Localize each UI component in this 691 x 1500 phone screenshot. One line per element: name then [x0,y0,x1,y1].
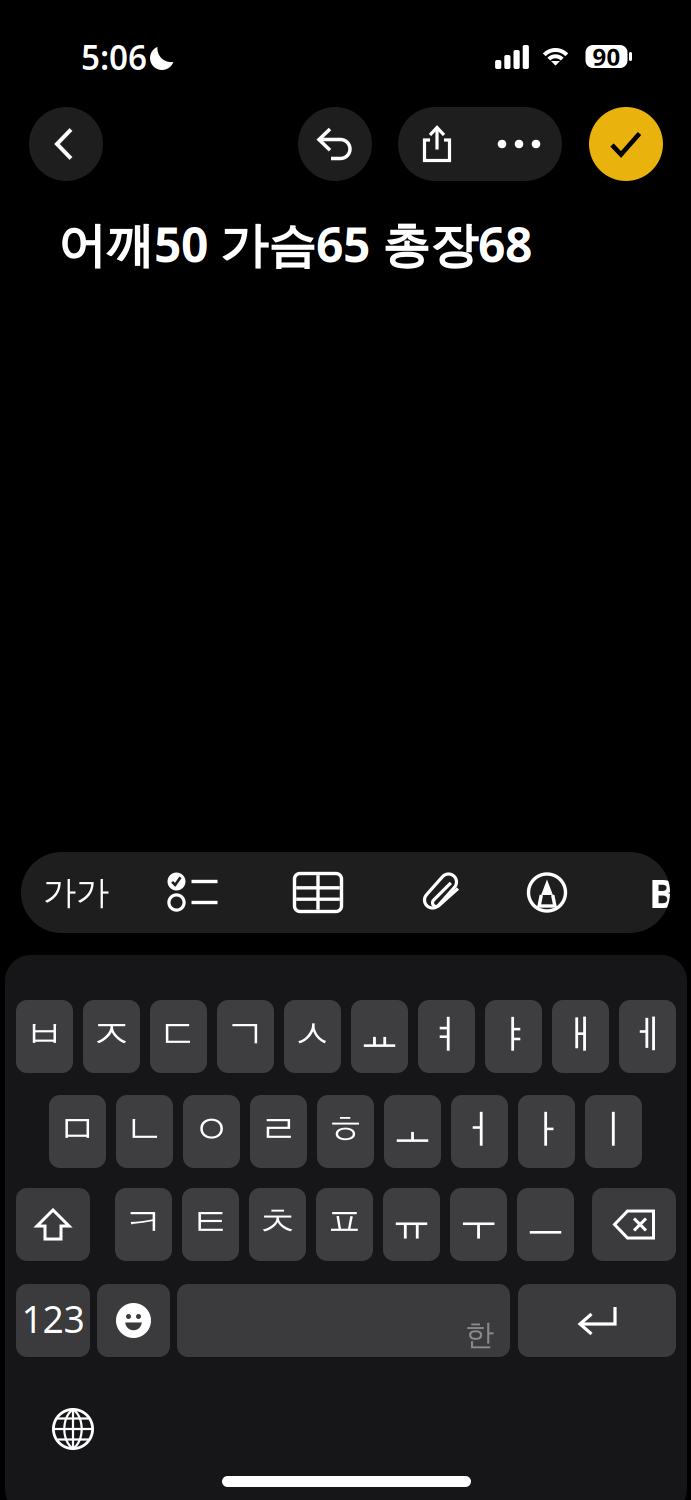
staticText: 90 [592,41,620,72]
button[interactable]: ㅣ [585,1095,642,1168]
staticText: 123 [21,1294,84,1343]
button[interactable]: 123 [16,1284,90,1357]
button[interactable]: ㅕ [418,1000,475,1073]
staticText: ㄷ [158,1010,198,1059]
staticText: ㅏ [526,1105,566,1154]
button[interactable]: ㅇ [183,1095,240,1168]
button[interactable]: Done [589,107,663,181]
staticText: ㅇ [191,1105,231,1154]
staticText: ㅍ [324,1198,364,1247]
button[interactable]: ㅅ [284,1000,341,1073]
button[interactable]: ㅜ [450,1188,507,1261]
staticText: ㅂ [24,1010,64,1059]
button[interactable]: Back [29,107,103,181]
staticText: ㄱ [225,1010,265,1059]
staticText: ㅐ [560,1010,600,1059]
staticText: ㅗ [392,1105,432,1154]
staticText: 5:06 [81,35,147,79]
staticText: ㅓ [459,1105,499,1154]
button[interactable]: Emoji [97,1284,170,1357]
staticText: ㅁ [57,1105,97,1154]
button[interactable]: ㅡ [517,1188,574,1261]
button[interactable]: Share [398,107,476,181]
staticText: ㅅ [292,1010,332,1059]
button[interactable]: Table [258,852,378,933]
staticText: ㅜ [458,1198,498,1247]
button[interactable]: Return [518,1284,676,1357]
button[interactable]: ㄴ [116,1095,173,1168]
staticText: ㅑ [493,1010,533,1059]
staticText: 한 [465,1317,494,1353]
staticText: ㅊ [257,1198,297,1247]
button[interactable]: More [476,107,562,181]
staticText: 어깨50 가슴65 총장68 [58,212,532,276]
button[interactable]: ㅑ [485,1000,542,1073]
staticText: ㅔ [627,1010,667,1059]
button[interactable]: ㄱ [217,1000,274,1073]
button[interactable]: ㅁ [49,1095,106,1168]
button[interactable]: ㅐ [552,1000,609,1073]
button[interactable]: ㅏ [518,1095,575,1168]
button[interactable]: Undo [298,107,372,181]
button[interactable]: ㅛ [351,1000,408,1073]
staticText: 가가 [43,872,109,913]
button[interactable]: ㅎ [317,1095,374,1168]
staticText: ㅌ [190,1198,230,1247]
staticText: B [649,866,676,919]
button[interactable]: Bold [649,852,671,933]
button[interactable]: ㅔ [619,1000,676,1073]
button[interactable]: ㄷ [150,1000,207,1073]
staticText: ㅣ [593,1105,633,1154]
staticText: ㅕ [426,1010,466,1059]
staticText: ㄴ [124,1105,164,1154]
button[interactable]: Attach [381,852,501,933]
button[interactable]: Markup [487,852,607,933]
button[interactable]: ㅗ [384,1095,441,1168]
button[interactable]: ㅂ [16,1000,73,1073]
button[interactable]: Delete [592,1188,676,1261]
button[interactable]: Next keyboard [47,1403,99,1455]
button[interactable]: ㅠ [383,1188,440,1261]
staticText: ㅎ [325,1105,365,1154]
staticText: ㄹ [258,1105,298,1154]
staticText: ㅠ [391,1198,431,1247]
button[interactable]: ㅈ [83,1000,140,1073]
staticText: ㅈ [91,1010,131,1059]
button[interactable]: ㅓ [451,1095,508,1168]
button[interactable]: 가가 [21,852,131,933]
button[interactable]: ㅊ [249,1188,306,1261]
button[interactable]: ㅋ [115,1188,172,1261]
button[interactable]: 한 [177,1284,510,1357]
button[interactable]: Shift [16,1188,90,1261]
staticText: ㅛ [359,1010,399,1059]
button[interactable]: ㅌ [182,1188,239,1261]
button[interactable]: ㅍ [316,1188,373,1261]
staticText: ㅡ [525,1198,565,1247]
button[interactable]: ㄹ [250,1095,307,1168]
staticText: ㅋ [123,1198,163,1247]
button[interactable]: Checklist [133,852,253,933]
